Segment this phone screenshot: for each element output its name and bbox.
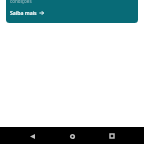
staticText: Saiba mais: [10, 9, 37, 16]
staticText: condições: [10, 0, 32, 4]
button[interactable]: Back: [24, 128, 40, 144]
button[interactable]: condições: [6, 0, 138, 23]
button[interactable]: Recents: [104, 128, 120, 144]
button[interactable]: Home: [64, 128, 80, 144]
